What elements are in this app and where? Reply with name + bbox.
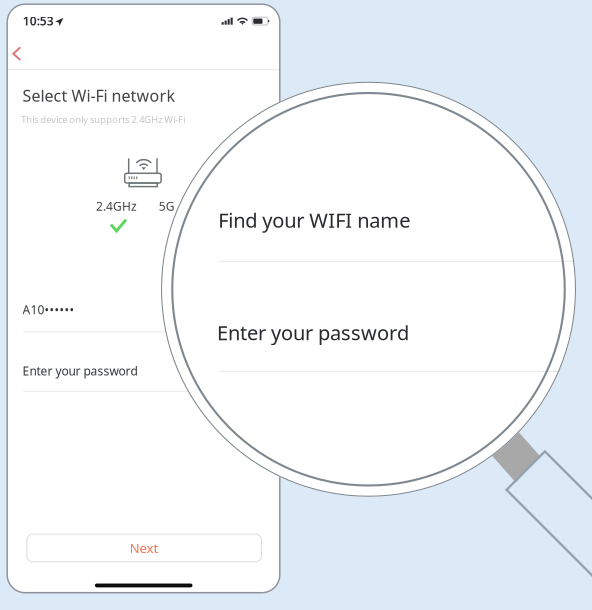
staticText: Select Wi-Fi network	[22, 85, 175, 106]
staticText: A10••••••	[22, 302, 74, 318]
staticText: Next	[130, 539, 159, 557]
staticText: Enter your password	[22, 363, 137, 379]
staticText: 2.4GHz	[96, 198, 137, 214]
button[interactable]: Next	[27, 534, 261, 562]
staticText: Find your WIFI name	[218, 207, 410, 233]
staticText: This device only supports 2.4GHz Wi-Fi	[21, 113, 185, 126]
button[interactable]: Back	[7, 40, 37, 71]
staticText: 5G	[159, 198, 175, 214]
staticText: 10:53	[23, 13, 54, 29]
staticText: Enter your password	[217, 319, 409, 346]
